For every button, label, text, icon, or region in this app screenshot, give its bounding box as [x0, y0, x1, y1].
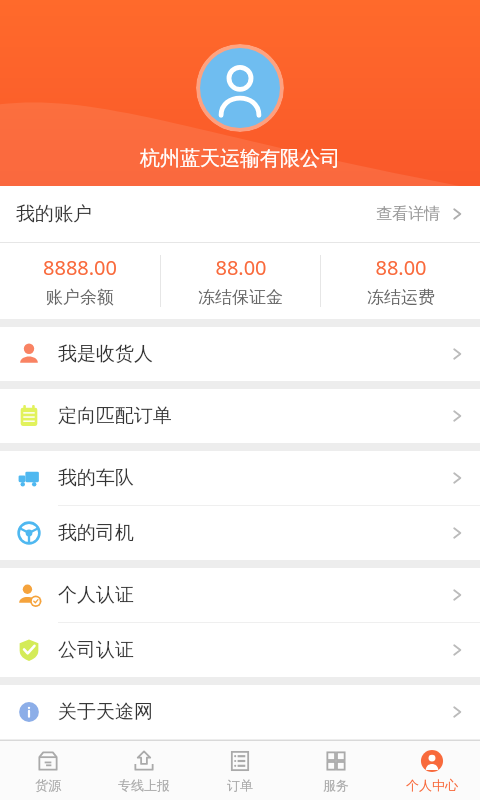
button[interactable]: 专线上报 [96, 741, 192, 800]
button[interactable]: 88.00 [161, 243, 320, 319]
button[interactable]: 8888.00 [0, 243, 160, 319]
staticText: 我是收货人 [58, 342, 153, 366]
staticText: 我的账户 [16, 202, 92, 226]
staticText: 公司认证 [58, 638, 134, 662]
button[interactable]: 我是收货人 [0, 327, 480, 381]
staticText: 账户余额 [46, 287, 114, 308]
staticText: 关于天途网 [58, 700, 153, 724]
button[interactable]: 我的账户 [0, 186, 480, 242]
staticText: 订单 [227, 777, 253, 793]
staticText: 8888.00 [43, 254, 117, 281]
staticText: 88.00 [215, 254, 267, 281]
staticText: 个人中心 [406, 777, 458, 793]
button[interactable]: 我的司机 [0, 506, 480, 560]
button[interactable]: 我的车队 [0, 451, 480, 505]
staticText: 货源 [35, 777, 61, 793]
staticText: 我的车队 [58, 466, 134, 490]
staticText: 服务 [323, 777, 349, 793]
staticText: 定向匹配订单 [58, 404, 172, 428]
staticText: 冻结运费 [367, 287, 435, 308]
button[interactable]: 关于天途网 [0, 685, 480, 739]
staticText: 88.00 [375, 254, 427, 281]
button[interactable]: 定向匹配订单 [0, 389, 480, 443]
button[interactable]: 个人认证 [0, 568, 480, 622]
button[interactable]: 订单 [192, 741, 288, 800]
staticText: 杭州蓝天运输有限公司 [140, 146, 340, 171]
button[interactable]: 服务 [288, 741, 384, 800]
staticText: 查看详情 [376, 204, 440, 224]
button[interactable]: 个人中心 [384, 741, 480, 800]
button[interactable]: 88.00 [321, 243, 480, 319]
button[interactable]: 公司认证 [0, 623, 480, 677]
staticText: 专线上报 [118, 777, 170, 793]
staticText: 个人认证 [58, 583, 134, 607]
staticText: 冻结保证金 [198, 287, 283, 308]
button[interactable]: 货源 [0, 741, 96, 800]
staticText: 我的司机 [58, 521, 134, 545]
